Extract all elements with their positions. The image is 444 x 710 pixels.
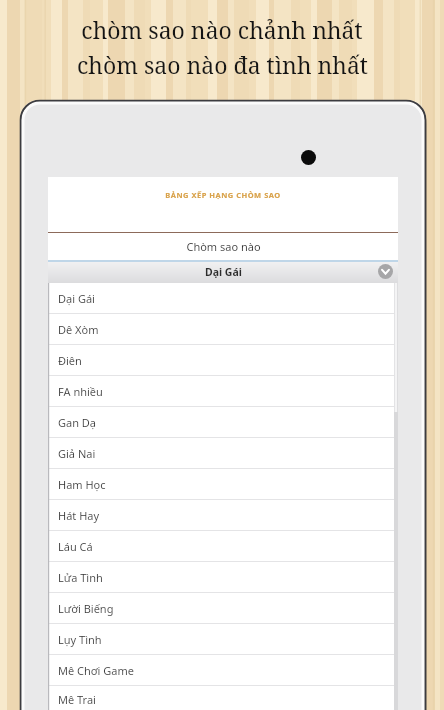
button[interactable]: FA nhiều: [48, 376, 398, 407]
staticText: Láu Cá: [58, 539, 93, 554]
button[interactable]: Lửa Tình: [48, 562, 398, 593]
button[interactable]: Dại Gái: [48, 283, 398, 314]
button[interactable]: Lười Biếng: [48, 593, 398, 624]
staticText: Lụy Tình: [58, 632, 102, 647]
button[interactable]: Mê Trai: [48, 686, 398, 710]
staticText: Dê Xòm: [58, 322, 99, 337]
staticText: chòm sao nào đa tình nhất: [77, 49, 368, 80]
staticText: Dại Gái: [58, 291, 95, 306]
staticText: Gan Dạ: [58, 415, 97, 430]
staticText: Dại Gái: [205, 265, 242, 279]
other: Open dropdown: [378, 264, 393, 279]
staticText: Điên: [58, 353, 82, 368]
button[interactable]: Dại Gái: [48, 260, 398, 283]
staticText: Mê Trai: [58, 692, 96, 707]
button[interactable]: Mê Chơi Game: [48, 655, 398, 686]
button[interactable]: Gan Dạ: [48, 407, 398, 438]
button[interactable]: Dê Xòm: [48, 314, 398, 345]
button[interactable]: Điên: [48, 345, 398, 376]
button[interactable]: Lụy Tình: [48, 624, 398, 655]
staticText: Giả Nai: [58, 446, 96, 461]
staticText: chòm sao nào chảnh nhất: [81, 14, 363, 45]
staticText: Hát Hay: [58, 508, 100, 523]
button[interactable]: Hát Hay: [48, 500, 398, 531]
staticText: Mê Chơi Game: [58, 663, 134, 678]
staticText: Ham Học: [58, 477, 106, 492]
staticText: Chòm sao nào: [186, 239, 261, 254]
button[interactable]: Ham Học: [48, 469, 398, 500]
button[interactable]: Giả Nai: [48, 438, 398, 469]
staticText: Lười Biếng: [58, 601, 114, 616]
button[interactable]: Láu Cá: [48, 531, 398, 562]
staticText: Lửa Tình: [58, 570, 103, 585]
staticText: BẢNG XẾP HẠNG CHÒM SAO: [48, 190, 398, 200]
staticText: FA nhiều: [58, 384, 103, 399]
